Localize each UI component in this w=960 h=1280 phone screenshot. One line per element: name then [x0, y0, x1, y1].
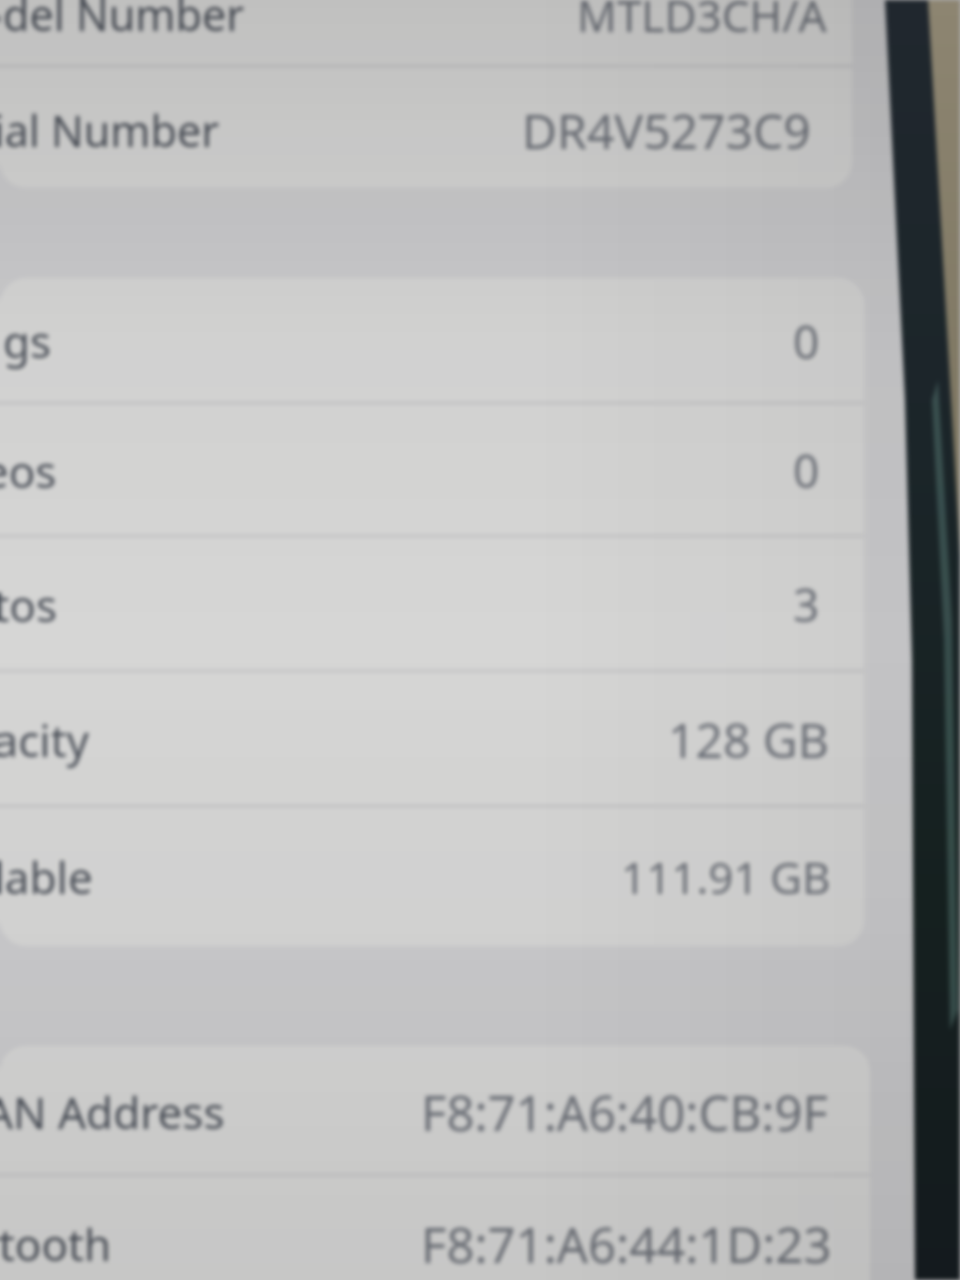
staticText: Serial Number — [0, 101, 220, 160]
staticText: Available — [0, 847, 93, 907]
staticText: Photos — [0, 575, 58, 635]
staticText: 128 GB — [668, 707, 829, 772]
staticText: Capacity — [0, 710, 90, 770]
staticText: Videos — [0, 441, 57, 501]
button[interactable]: Serial Number — [0, 67, 852, 188]
button[interactable]: Songs — [0, 278, 864, 404]
staticText: WLAN Address — [0, 1082, 225, 1142]
button[interactable]: Available — [0, 807, 864, 946]
button[interactable]: Photos — [0, 537, 864, 672]
button[interactable]: Model Number — [0, 0, 852, 67]
button[interactable]: WLAN Address — [0, 1046, 870, 1176]
staticText: Songs — [0, 311, 52, 371]
staticText: 0 — [793, 439, 820, 502]
staticText: Model Number — [0, 0, 244, 44]
staticText: 111.91 GB — [621, 847, 831, 907]
staticText: DR4V5273C9 — [522, 98, 811, 163]
button[interactable]: Bluetooth — [0, 1176, 870, 1280]
staticText: Bluetooth — [0, 1214, 112, 1274]
staticText: MTLD3CH/A — [577, 0, 827, 45]
staticText: 3 — [793, 573, 820, 636]
staticText: 0 — [793, 310, 820, 373]
button[interactable]: Videos — [0, 404, 864, 537]
staticText: F8:71:A6:40:CB:9F — [421, 1079, 828, 1146]
staticText: F8:71:A6:44:1D:23 — [421, 1211, 832, 1278]
button[interactable]: Capacity — [0, 672, 864, 807]
